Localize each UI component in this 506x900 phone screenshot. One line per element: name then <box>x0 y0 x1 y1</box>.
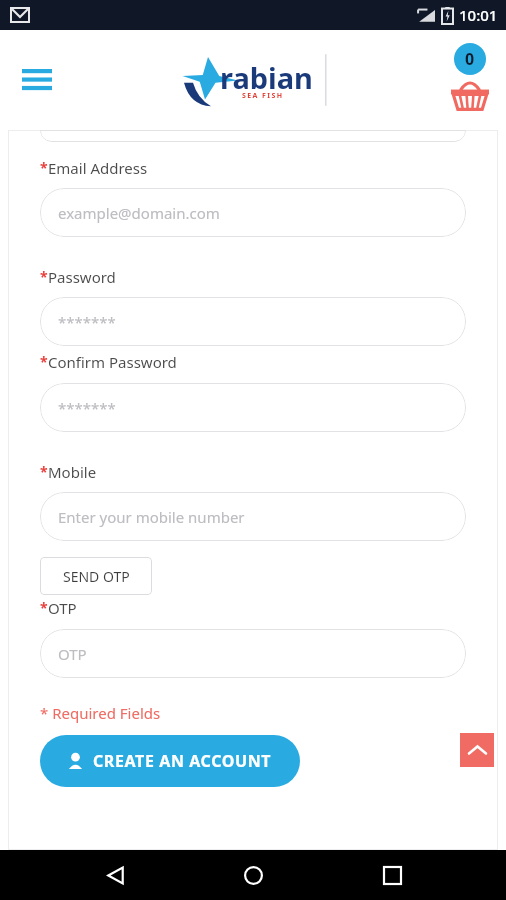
button[interactable]: ******* <box>40 383 466 432</box>
staticText: * <box>40 352 48 371</box>
staticText: 10:01 <box>459 5 498 25</box>
button[interactable]: Enter your mobile number <box>40 492 466 541</box>
staticText: * <box>40 267 48 286</box>
button[interactable]: Scroll to top <box>460 733 494 767</box>
button[interactable]: example@domain.com <box>40 188 466 237</box>
button[interactable]: Back <box>91 851 139 899</box>
button[interactable]: Menu <box>14 57 60 103</box>
button[interactable]: Cart, 0 items <box>444 41 496 119</box>
staticText: CREATE AN ACCOUNT <box>93 750 272 772</box>
button[interactable]: CREATE AN ACCOUNT <box>40 735 300 787</box>
staticText: * Required Fields <box>40 703 161 723</box>
staticText: SEND OTP <box>63 567 130 586</box>
button[interactable]: Recent apps <box>368 851 416 899</box>
staticText: SEA FISH <box>242 91 284 101</box>
button[interactable]: ******* <box>40 297 466 346</box>
staticText: Email Address <box>48 158 148 178</box>
staticText: Confirm Password <box>48 352 177 372</box>
staticText: ******* <box>58 398 116 418</box>
staticText: Password <box>48 267 116 287</box>
staticText: example@domain.com <box>58 203 220 223</box>
staticText: OTP <box>58 644 87 664</box>
button[interactable]: OTP <box>40 629 466 678</box>
staticText: Mobile <box>48 462 97 482</box>
staticText: ******* <box>58 312 116 332</box>
staticText: rabian <box>220 58 313 97</box>
staticText: * <box>40 462 48 481</box>
staticText: * <box>40 158 48 177</box>
staticText: 0 <box>465 48 475 70</box>
button[interactable]: Home <box>229 851 277 899</box>
staticText: Enter your mobile number <box>58 507 245 527</box>
button[interactable]: SEND OTP <box>40 557 152 595</box>
staticText: * <box>40 598 48 617</box>
staticText: OTP <box>48 598 77 618</box>
